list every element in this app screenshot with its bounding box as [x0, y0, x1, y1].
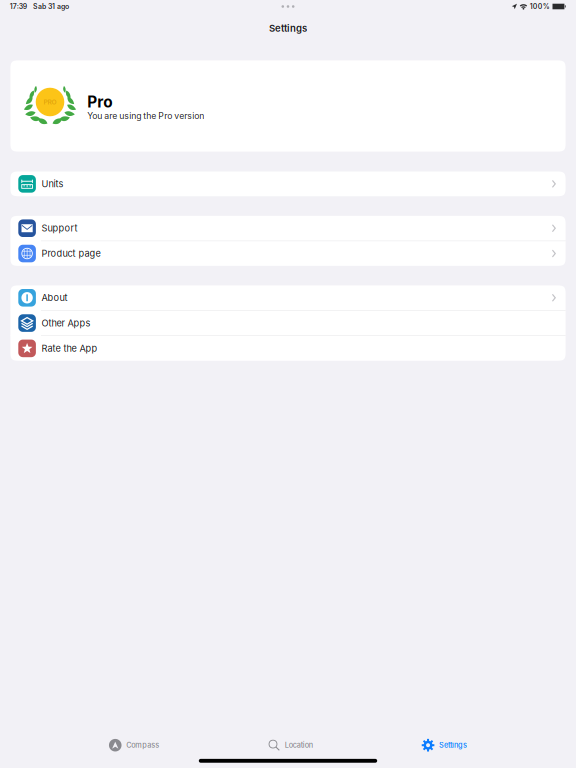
button[interactable]: Rate the App — [10, 336, 566, 361]
staticText: Location — [285, 741, 313, 750]
button[interactable]: Settings — [422, 729, 467, 761]
staticText: You are using the Pro version — [87, 110, 204, 121]
staticText: Settings — [439, 741, 467, 750]
button[interactable]: Location — [268, 729, 313, 761]
staticText: Compass — [126, 741, 159, 750]
staticText: 100% — [530, 2, 550, 11]
button[interactable]: Compass — [109, 729, 159, 761]
staticText: 17:39 — [10, 2, 27, 11]
staticText: Pro — [87, 93, 112, 111]
staticText: Settings — [269, 22, 307, 34]
staticText: Other Apps — [41, 317, 90, 329]
staticText: Support — [41, 223, 77, 234]
staticText: Sab 31 ago — [33, 2, 69, 11]
button[interactable]: Product page — [10, 241, 566, 266]
button[interactable]: Support — [10, 216, 566, 241]
staticText: PRO — [43, 98, 56, 106]
staticText: Product page — [41, 248, 100, 259]
button[interactable]: Other Apps — [10, 311, 566, 335]
button[interactable]: Units — [10, 171, 566, 196]
staticText: Units — [41, 178, 63, 189]
staticText: About — [41, 292, 67, 303]
staticText: Rate the App — [41, 343, 97, 354]
button[interactable]: About — [10, 285, 566, 310]
button[interactable]: Settings — [269, 13, 307, 39]
